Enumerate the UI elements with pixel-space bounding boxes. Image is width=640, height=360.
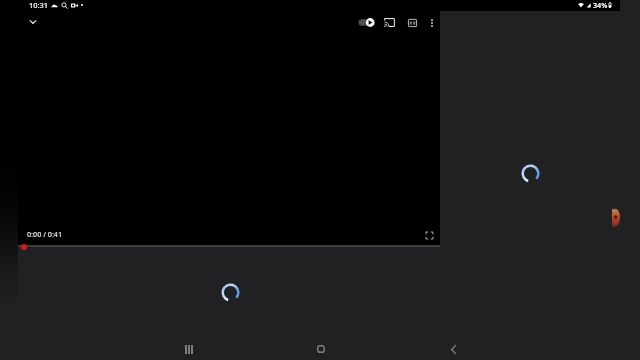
- button[interactable]: Minimize player: [23, 12, 43, 32]
- staticText: 0:00 / 0:41: [27, 229, 63, 239]
- button[interactable]: Fullscreen: [421, 227, 437, 243]
- button[interactable]: Autoplay is on: [355, 14, 375, 31]
- button[interactable]: Cast: [381, 14, 398, 31]
- button[interactable]: Captions: [404, 14, 421, 31]
- staticText: 34%: [593, 0, 608, 10]
- button[interactable]: Recent apps: [180, 340, 198, 358]
- button[interactable]: More options: [423, 14, 440, 31]
- button[interactable]: Back: [444, 340, 462, 358]
- staticText: 10:31: [29, 0, 48, 10]
- button[interactable]: Home: [312, 340, 330, 358]
